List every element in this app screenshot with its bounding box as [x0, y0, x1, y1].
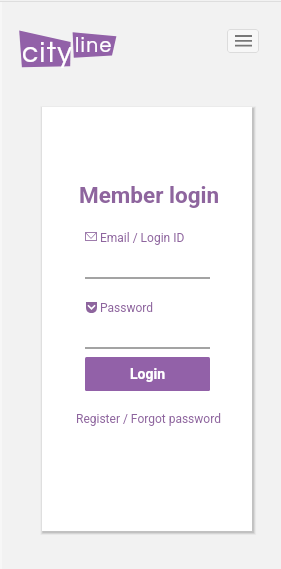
staticText: Register / Forgot password: [76, 412, 221, 426]
staticText: Email / Login ID: [100, 231, 185, 245]
button[interactable]: Open menu: [227, 29, 259, 53]
staticText: Member login: [79, 182, 220, 208]
button[interactable]: cityline home: [14, 26, 124, 74]
button[interactable]: Register / Forgot password: [76, 412, 221, 426]
staticText: Login: [130, 366, 166, 382]
button[interactable]: Login: [85, 357, 210, 391]
staticText: city: [22, 38, 74, 68]
staticText: line: [75, 35, 113, 57]
staticText: Password: [100, 301, 154, 315]
